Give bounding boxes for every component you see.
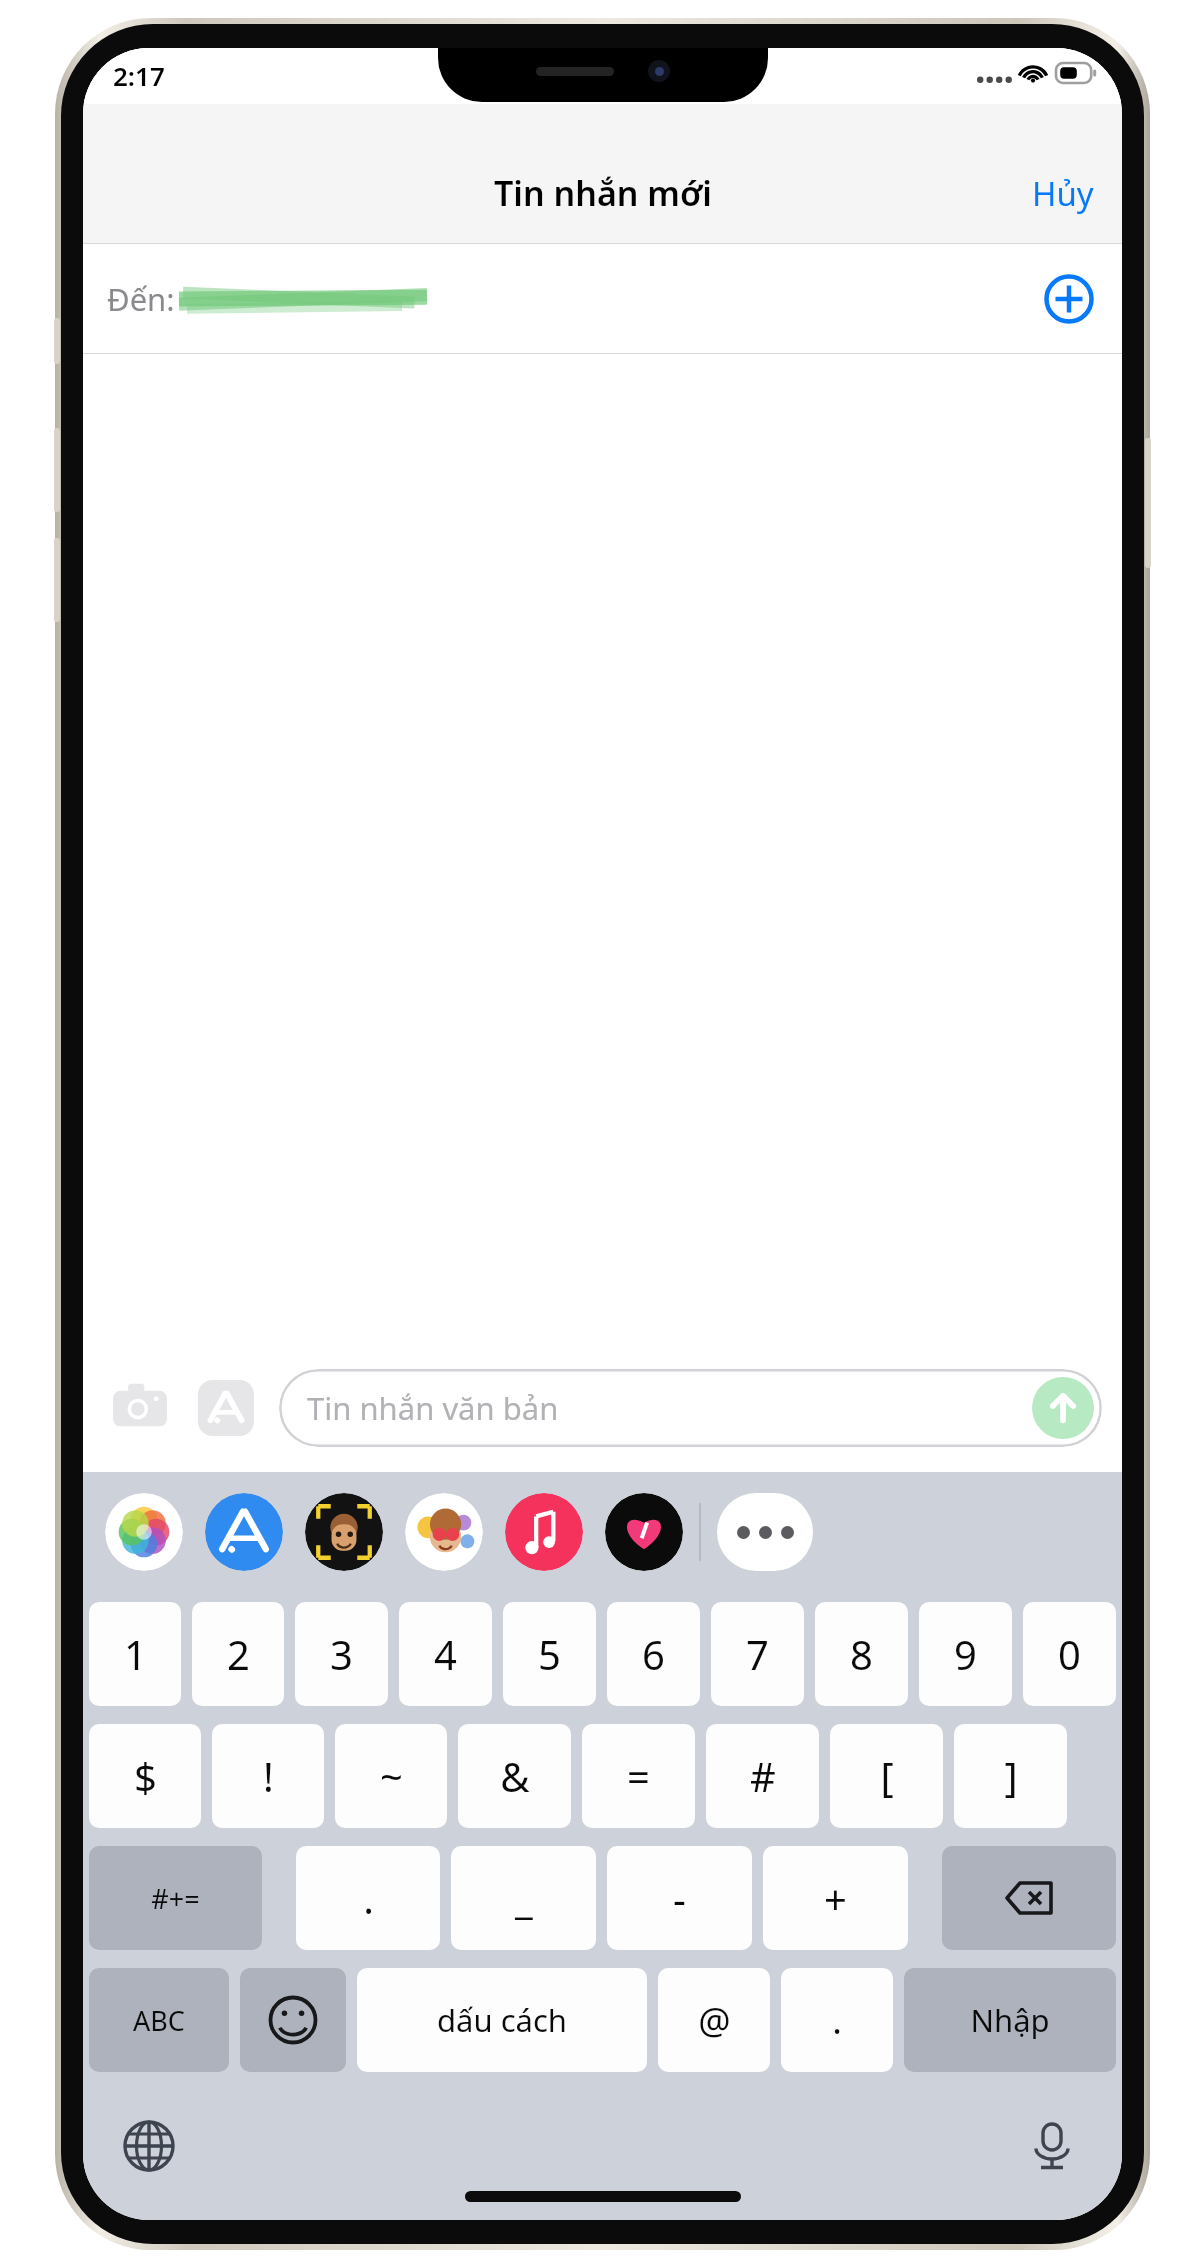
staticText: 8 [850,1627,873,1681]
button[interactable]: iMessage app [105,1493,183,1571]
staticText: + [824,1871,847,1925]
button[interactable]: 5 [503,1602,596,1706]
button[interactable]: Đến: [83,244,1122,354]
button[interactable]: + [763,1846,908,1950]
button[interactable]: 2 [192,1602,284,1706]
button[interactable]: Backspace [942,1846,1116,1950]
staticText: 6 [642,1627,665,1681]
staticText: Tin nhắn văn bản [307,1387,559,1429]
staticText: # [750,1749,776,1803]
staticText: 2 [227,1627,250,1681]
button[interactable]: 9 [919,1602,1012,1706]
staticText: @ [698,1996,731,2045]
button[interactable]: 3 [295,1602,388,1706]
button[interactable]: More apps [717,1493,813,1571]
button[interactable]: Hủy [1018,163,1108,224]
button[interactable]: iMessage app [405,1493,483,1571]
button[interactable]: iMessage app [205,1493,283,1571]
staticText: _ [515,1871,533,1925]
staticText: . [363,1871,374,1925]
button[interactable]: 6 [607,1602,700,1706]
button[interactable]: iMessage app [505,1493,583,1571]
button[interactable]: Nhập [904,1968,1116,2072]
button[interactable]: 4 [399,1602,492,1706]
button[interactable]: Change keyboard [111,2108,187,2184]
staticText: 3 [330,1627,353,1681]
staticText: Đến: [107,278,175,320]
button[interactable]: ] [954,1724,1067,1828]
staticText: & [500,1749,530,1803]
staticText: ! [263,1749,274,1803]
staticText: 4 [434,1627,457,1681]
staticText: 7 [746,1627,769,1681]
button[interactable]: [ [830,1724,943,1828]
staticText: - [673,1871,686,1925]
button[interactable]: #+= [89,1846,262,1950]
button[interactable]: . [296,1846,440,1950]
staticText: 2:17 [113,58,165,93]
button[interactable]: & [458,1724,571,1828]
staticText: 5 [538,1627,561,1681]
button[interactable]: Send [1032,1377,1094,1439]
button[interactable]: Dictation [1014,2108,1090,2184]
staticText: $ [134,1749,157,1803]
button[interactable]: 1 [89,1602,181,1706]
button[interactable]: = [582,1724,695,1828]
button[interactable]: ! [212,1724,324,1828]
button[interactable]: _ [451,1846,596,1950]
button[interactable]: ~ [335,1724,447,1828]
staticText: dấu cách [437,1999,567,2041]
staticText: 1 [124,1627,147,1681]
staticText: 9 [954,1627,977,1681]
button[interactable]: Add contact [1040,270,1098,328]
button[interactable]: # [706,1724,819,1828]
button[interactable]: ABC [89,1968,229,2072]
button[interactable]: 7 [711,1602,804,1706]
staticText: . [832,1996,842,2045]
button[interactable]: . [781,1968,893,2072]
button[interactable]: Tin nhắn văn bản [279,1369,1102,1447]
button[interactable]: 0 [1023,1602,1116,1706]
button[interactable]: $ [89,1724,201,1828]
staticText: 0 [1058,1627,1081,1681]
staticText: ~ [380,1749,403,1803]
button[interactable]: iMessage app [605,1493,683,1571]
staticText: ] [1004,1749,1018,1803]
button[interactable]: Camera [103,1371,177,1445]
staticText: [ [880,1749,894,1803]
staticText: #+= [151,1880,200,1917]
button[interactable]: Emoji [240,1968,346,2072]
staticText: ABC [133,2002,185,2039]
button[interactable]: 8 [815,1602,908,1706]
staticText: = [627,1749,650,1803]
button[interactable]: iMessage app [305,1493,383,1571]
button[interactable]: dấu cách [357,1968,647,2072]
button[interactable]: @ [658,1968,770,2072]
button[interactable]: - [607,1846,752,1950]
staticText: Tin nhắn mới [494,170,712,216]
staticText: Hủy [1032,171,1094,216]
staticText: Nhập [970,1999,1050,2041]
button[interactable]: App Store [189,1371,263,1445]
